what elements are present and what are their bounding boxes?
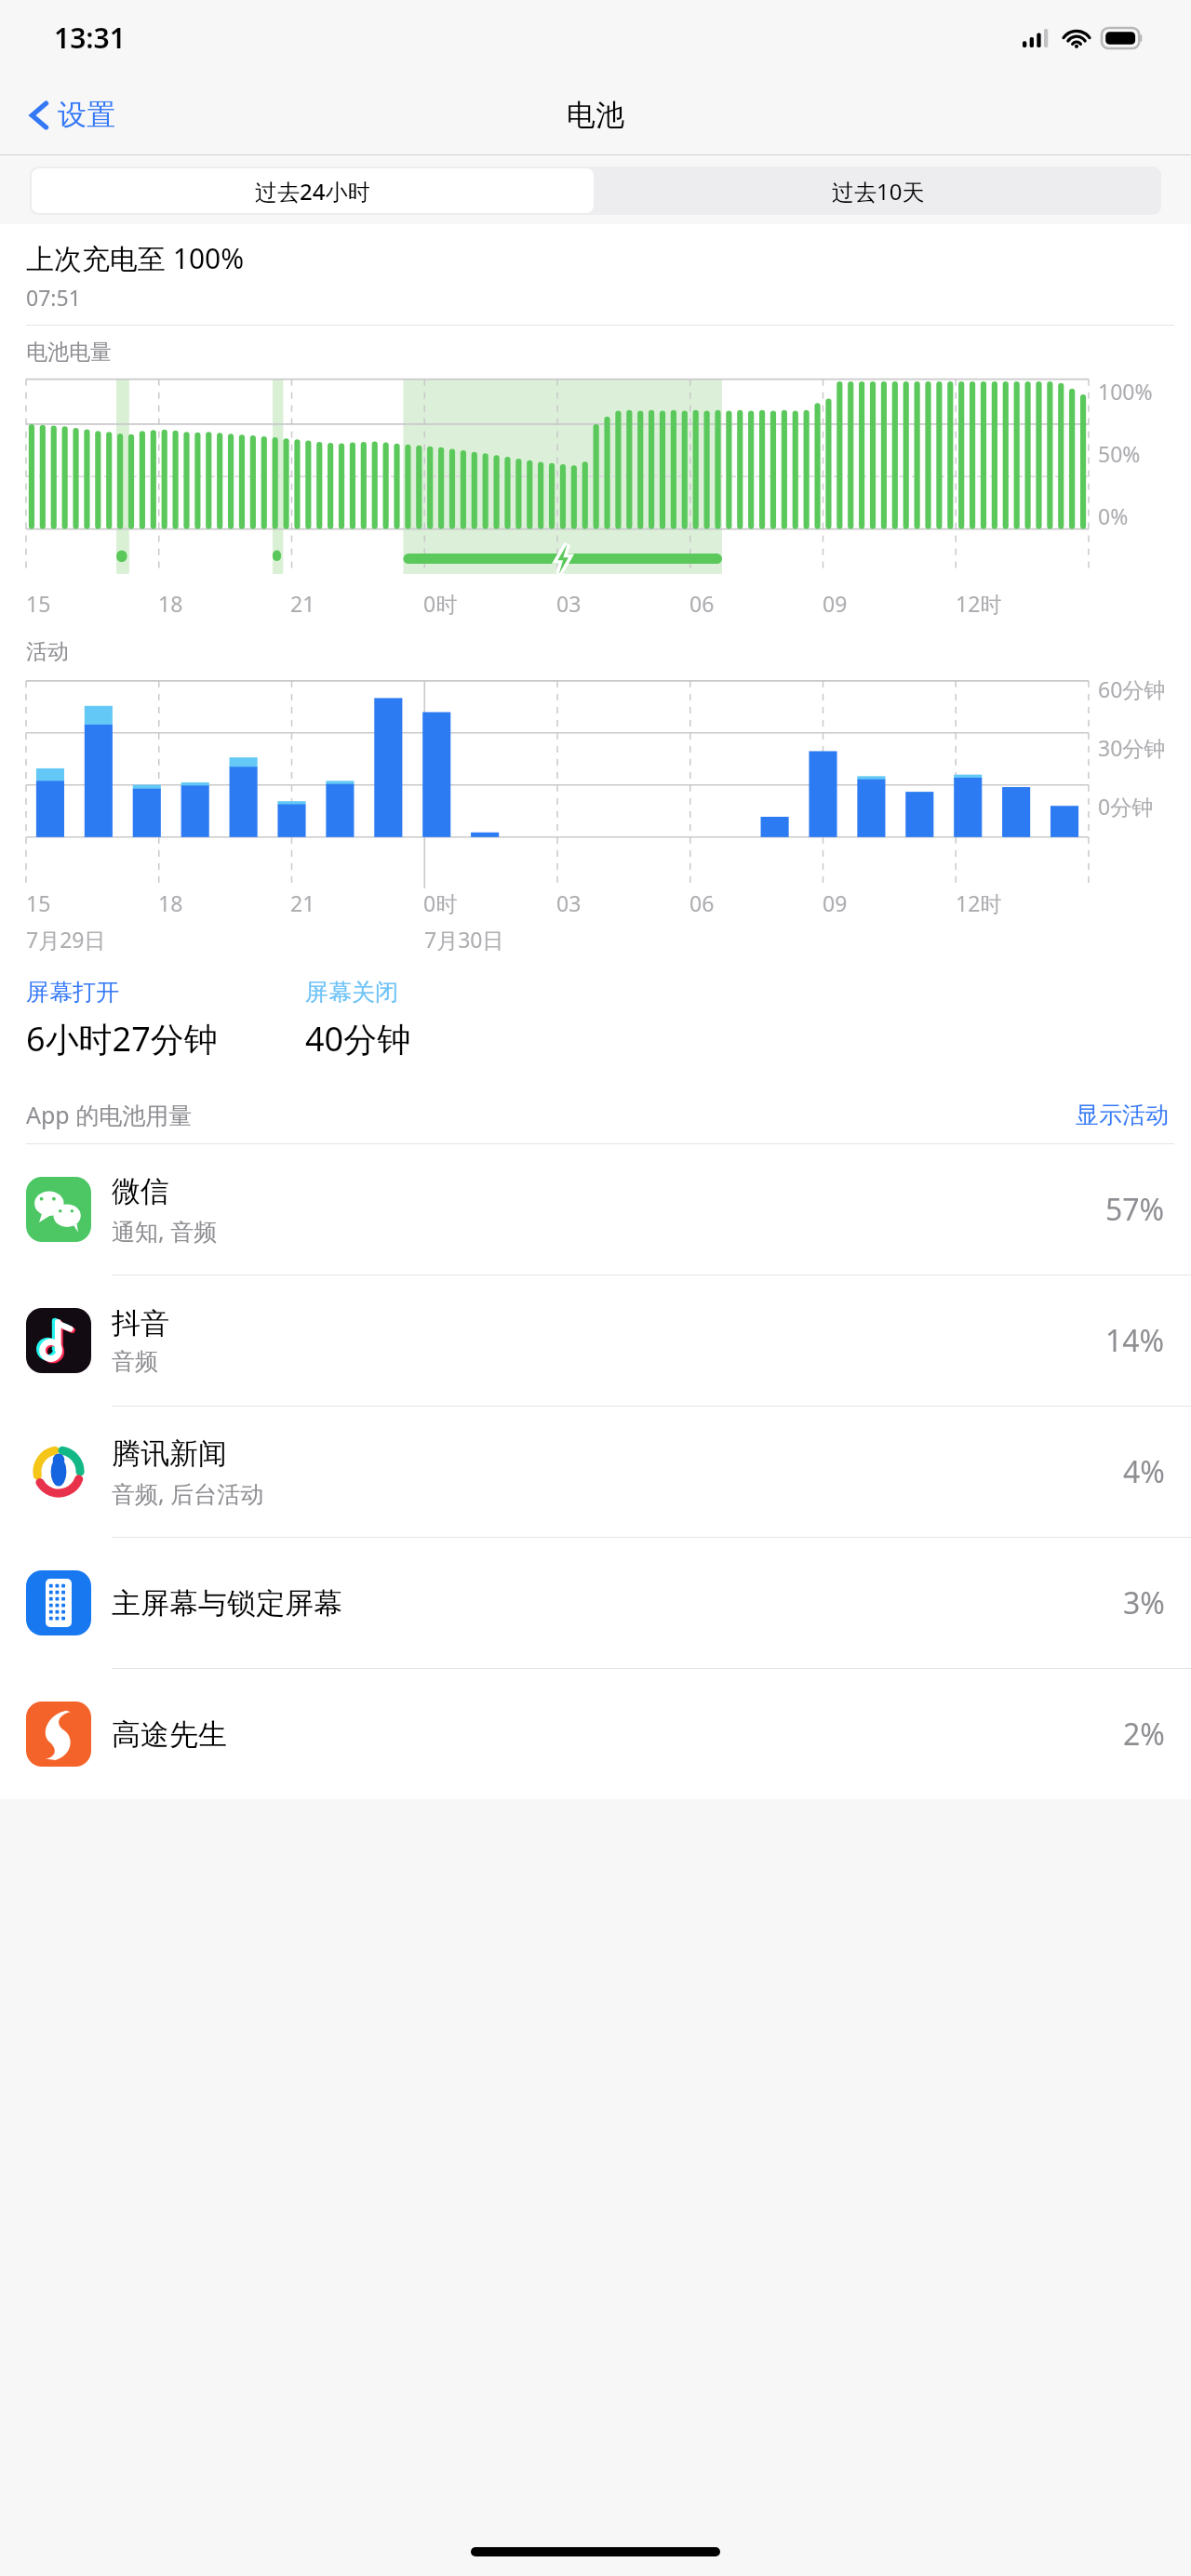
button[interactable]: 设置 [26, 91, 119, 139]
staticText: 60分钟 [1098, 674, 1166, 703]
staticText: 过去24小时 [255, 176, 370, 207]
staticText: 40分钟 [305, 1016, 411, 1061]
staticText: 09 [823, 589, 848, 618]
button[interactable]: 高途先生 [0, 1669, 1191, 1799]
staticText: 15 [26, 888, 51, 917]
button[interactable]: 主屏幕与锁定屏幕 [0, 1538, 1191, 1668]
staticText: 高途先生 [112, 1716, 227, 1753]
staticText: 14% [1105, 1320, 1165, 1361]
staticText: 06 [689, 888, 715, 917]
staticText: 07:51 [26, 283, 81, 312]
staticText: 06 [689, 589, 715, 618]
staticText: 09 [823, 888, 848, 917]
staticText: 屏幕关闭 [305, 978, 398, 1007]
button[interactable]: 腾讯新闻 [0, 1407, 1191, 1537]
staticText: 显示活动 [1076, 1101, 1169, 1129]
staticText: 57% [1105, 1189, 1165, 1230]
button[interactable]: 过去24小时 [32, 168, 594, 213]
staticText: 6小时27分钟 [26, 1016, 218, 1061]
staticText: 主屏幕与锁定屏幕 [112, 1585, 342, 1622]
staticText: 微信 [112, 1173, 169, 1209]
staticText: 设置 [58, 97, 115, 133]
button[interactable]: 微信 [0, 1144, 1191, 1275]
staticText: 21 [290, 589, 315, 618]
staticText: 腾讯新闻 [112, 1435, 227, 1472]
staticText: 15 [26, 589, 51, 618]
button[interactable]: 显示活动 [1076, 1101, 1169, 1129]
staticText: 电池电量 [26, 339, 112, 366]
staticText: 屏幕打开 [26, 978, 119, 1007]
staticText: 18 [158, 589, 183, 618]
staticText: 4% [1123, 1451, 1165, 1492]
staticText: 50% [1098, 439, 1141, 468]
staticText: 0时 [423, 888, 458, 917]
staticText: 21 [290, 888, 315, 917]
staticText: 电池 [567, 97, 624, 133]
button[interactable]: 屏幕关闭 [305, 978, 411, 1061]
staticText: 7月29日 [26, 925, 106, 954]
staticText: 上次充电至 100% [26, 239, 245, 277]
staticText: 12时 [956, 888, 1002, 917]
staticText: 0分钟 [1098, 792, 1154, 821]
button[interactable]: 抖音 [0, 1275, 1191, 1406]
button[interactable]: 屏幕打开 [26, 978, 305, 1061]
staticText: 7月30日 [424, 925, 504, 954]
staticText: App 的电池用量 [26, 1099, 193, 1130]
staticText: 3% [1123, 1582, 1165, 1623]
staticText: 抖音 [112, 1305, 169, 1341]
staticText: 0时 [423, 589, 458, 618]
staticText: 13:31 [54, 19, 126, 57]
staticText: 通知, 音频 [112, 1215, 218, 1247]
staticText: 音频, 后台活动 [112, 1477, 264, 1509]
staticText: 0% [1098, 501, 1129, 530]
staticText: 03 [556, 589, 582, 618]
staticText: 12时 [956, 589, 1002, 618]
staticText: 过去10天 [832, 176, 925, 207]
staticText: 音频 [112, 1347, 158, 1376]
staticText: 活动 [26, 638, 69, 665]
staticText: 2% [1123, 1714, 1165, 1755]
button[interactable]: 过去10天 [595, 167, 1161, 215]
staticText: 18 [158, 888, 183, 917]
staticText: 03 [556, 888, 582, 917]
staticText: 100% [1098, 377, 1153, 406]
staticText: 30分钟 [1098, 733, 1166, 762]
